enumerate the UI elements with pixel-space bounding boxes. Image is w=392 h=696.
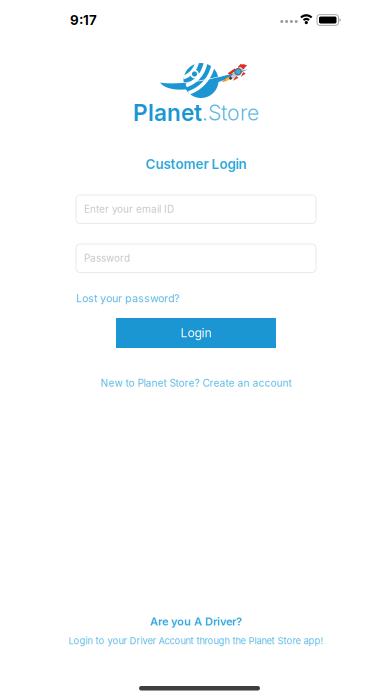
staticText: .Store: [202, 100, 259, 126]
staticText: 9:17: [70, 12, 97, 28]
staticText: Are you A Driver?: [150, 615, 242, 628]
button[interactable]: Password: [76, 244, 316, 272]
button[interactable]: Lost your password?: [76, 292, 179, 305]
button[interactable]: Enter your email ID: [76, 195, 316, 223]
staticText: Password: [84, 252, 130, 264]
staticText: Planet: [133, 99, 202, 126]
staticText: Enter your email ID: [84, 203, 174, 215]
staticText: Lost your password?: [76, 292, 179, 305]
button[interactable]: New to Planet Store? Create an account: [0, 377, 392, 389]
staticText: Login: [180, 326, 211, 340]
button[interactable]: Are you A Driver?: [0, 615, 392, 646]
staticText: Login to your Driver Account through the…: [68, 635, 323, 646]
staticText: Customer Login: [145, 156, 246, 172]
button[interactable]: Login: [116, 318, 276, 348]
staticText: New to Planet Store? Create an account: [100, 377, 291, 389]
